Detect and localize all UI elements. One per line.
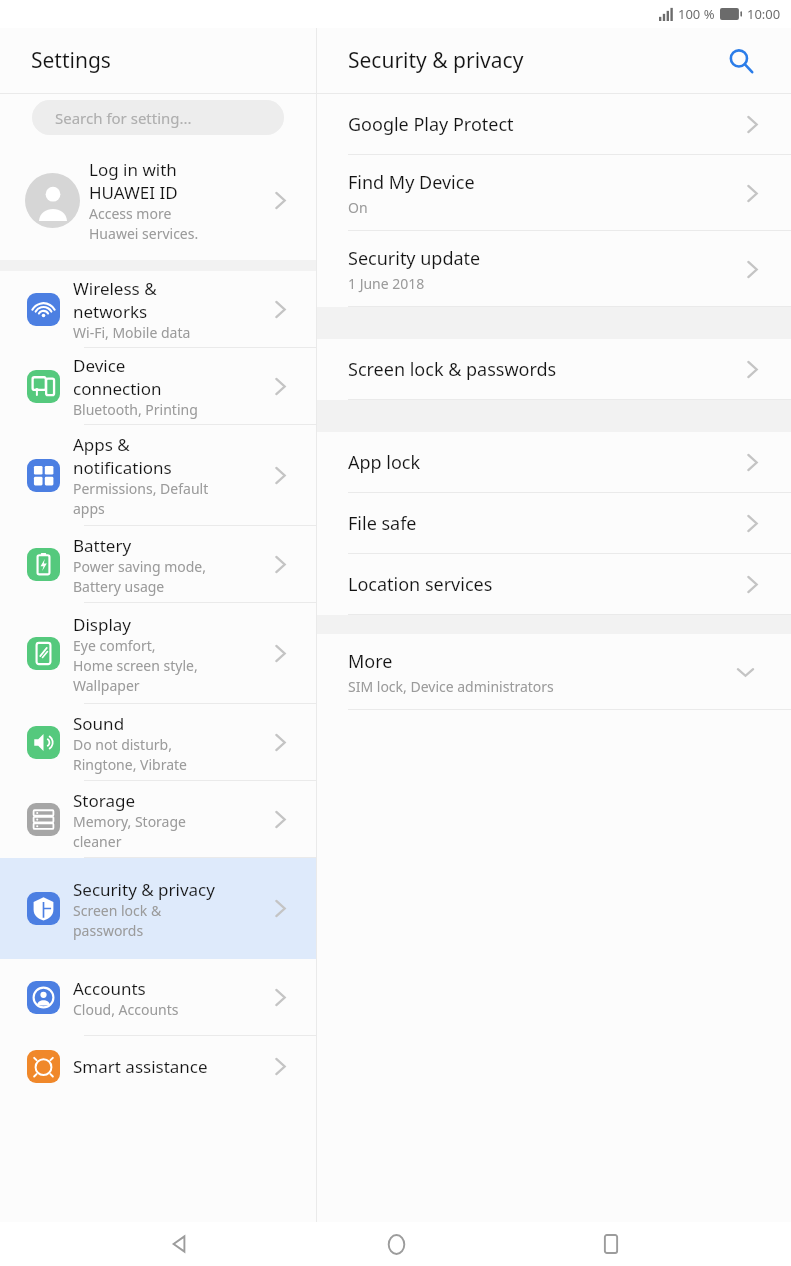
staticText: Find My Device bbox=[348, 170, 475, 195]
staticText: Search for setting... bbox=[55, 108, 192, 128]
button[interactable]: Sound bbox=[0, 704, 316, 781]
staticText: Google Play Protect bbox=[348, 112, 514, 137]
button[interactable]: Accounts bbox=[0, 959, 316, 1036]
staticText: Screen lock & passwords bbox=[73, 901, 162, 940]
staticText: Location services bbox=[348, 572, 493, 597]
staticText: Screen lock & passwords bbox=[348, 357, 557, 382]
button[interactable]: Search bbox=[719, 39, 763, 83]
staticText: Display bbox=[73, 613, 131, 636]
staticText: Storage bbox=[73, 789, 136, 812]
button[interactable]: Device connection bbox=[0, 348, 316, 425]
staticText: Settings bbox=[31, 46, 111, 75]
staticText: 1 June 2018 bbox=[348, 274, 425, 293]
button[interactable]: Wireless & networks bbox=[0, 271, 316, 348]
staticText: Memory, Storage cleaner bbox=[73, 812, 186, 851]
staticText: On bbox=[348, 198, 368, 217]
staticText: Permissions, Default apps bbox=[73, 479, 209, 518]
staticText: Power saving mode, Battery usage bbox=[73, 557, 206, 596]
button[interactable]: Security update bbox=[317, 231, 791, 307]
button[interactable]: Recents bbox=[576, 1222, 646, 1266]
button[interactable]: File safe bbox=[317, 493, 791, 554]
button[interactable]: Find My Device bbox=[317, 155, 791, 231]
staticText: App lock bbox=[348, 450, 421, 475]
staticText: File safe bbox=[348, 511, 417, 536]
button[interactable]: Back bbox=[145, 1222, 215, 1266]
staticText: Wireless & networks bbox=[73, 277, 157, 323]
staticText: Sound bbox=[73, 712, 125, 735]
button[interactable]: Storage bbox=[0, 781, 316, 858]
button[interactable]: Battery bbox=[0, 526, 316, 603]
button[interactable]: Home bbox=[361, 1222, 431, 1266]
staticText: Accounts bbox=[73, 977, 146, 1000]
staticText: Apps & notifications bbox=[73, 433, 172, 479]
staticText: Security & privacy bbox=[348, 46, 524, 75]
button[interactable]: Location services bbox=[317, 554, 791, 615]
button[interactable]: Search for setting... bbox=[32, 100, 284, 135]
button[interactable]: Display bbox=[0, 603, 316, 704]
button[interactable]: App lock bbox=[317, 432, 791, 493]
staticText: SIM lock, Device administrators bbox=[348, 677, 554, 696]
staticText: Battery bbox=[73, 534, 132, 557]
button[interactable]: Apps & notifications bbox=[0, 425, 316, 526]
staticText: Access more Huawei services. bbox=[89, 204, 199, 243]
staticText: Security update bbox=[348, 246, 481, 271]
staticText: Security & privacy bbox=[73, 878, 215, 901]
staticText: Device connection bbox=[73, 354, 162, 400]
staticText: Eye comfort, Home screen style, Wallpape… bbox=[73, 636, 198, 695]
staticText: 10:00 bbox=[747, 5, 781, 23]
staticText: Cloud, Accounts bbox=[73, 1000, 179, 1019]
staticText: Log in with HUAWEI ID bbox=[89, 158, 178, 204]
staticText: Do not disturb, Ringtone, Vibrate bbox=[73, 735, 187, 774]
button[interactable]: Google Play Protect bbox=[317, 94, 791, 155]
button[interactable]: More bbox=[317, 634, 791, 710]
button[interactable]: Screen lock & passwords bbox=[317, 339, 791, 400]
button[interactable]: Smart assistance bbox=[0, 1036, 316, 1096]
staticText: 100 % bbox=[678, 5, 715, 23]
staticText: Smart assistance bbox=[73, 1055, 208, 1078]
staticText: More bbox=[348, 649, 393, 674]
button[interactable]: Log in with HUAWEI ID bbox=[0, 140, 316, 260]
button[interactable]: Security & privacy bbox=[0, 858, 316, 959]
staticText: Wi-Fi, Mobile data bbox=[73, 323, 191, 342]
staticText: Bluetooth, Printing bbox=[73, 400, 198, 419]
